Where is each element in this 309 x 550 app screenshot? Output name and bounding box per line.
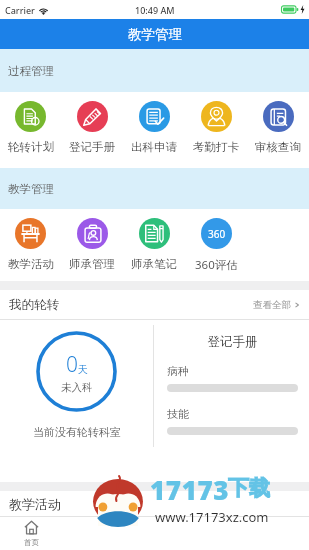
staticText: 教学管理 — [8, 182, 54, 196]
button[interactable]: 出科申请 — [123, 101, 185, 154]
staticText: www.17173xz.com — [155, 508, 269, 526]
staticText: 我的轮转 — [9, 297, 59, 313]
staticText: 天 — [78, 363, 88, 376]
button[interactable]: 首页 — [0, 517, 62, 550]
staticText: 当前没有轮转科室 — [33, 425, 121, 439]
staticText: 登记手册 — [167, 334, 298, 350]
staticText: 登记手册 — [69, 140, 115, 154]
staticText: 未入科 — [61, 381, 93, 394]
staticText: 17173 — [150, 472, 230, 507]
staticText: 师承管理 — [69, 257, 115, 271]
staticText: 360 — [208, 227, 226, 241]
button[interactable]: 我的轮转 — [0, 290, 309, 319]
button[interactable]: 师承笔记 — [123, 218, 185, 271]
button[interactable]: 轮转计划 — [0, 101, 61, 154]
staticText: 查看全部 — [253, 299, 291, 311]
staticText: 首页 — [24, 538, 39, 547]
button[interactable]: 审核查询 — [247, 101, 309, 154]
staticText: 360评估 — [195, 257, 238, 273]
staticText: 教学活动 — [9, 496, 61, 512]
staticText: 考勤打卡 — [193, 140, 239, 154]
button[interactable]: 师承管理 — [61, 218, 123, 271]
staticText: Carrier — [5, 4, 35, 16]
staticText: 0 — [66, 350, 78, 379]
button[interactable]: 登记手册 — [61, 101, 123, 154]
button[interactable]: 考勤打卡 — [185, 101, 247, 154]
staticText: 轮转计划 — [8, 140, 54, 154]
staticText: 教学管理 — [128, 26, 182, 43]
staticText: 审核查询 — [255, 140, 301, 154]
staticText: 师承笔记 — [131, 257, 177, 271]
staticText: 出科申请 — [131, 140, 177, 154]
staticText: 下载 — [228, 475, 270, 501]
staticText: 过程管理 — [8, 64, 54, 78]
staticText: 病种 — [167, 364, 189, 378]
staticText: 教学活动 — [8, 257, 54, 271]
staticText: 10:49 AM — [135, 4, 175, 16]
staticText: 技能 — [167, 407, 189, 421]
button[interactable]: 360 — [185, 218, 247, 273]
button[interactable]: 教学活动 — [0, 218, 61, 271]
